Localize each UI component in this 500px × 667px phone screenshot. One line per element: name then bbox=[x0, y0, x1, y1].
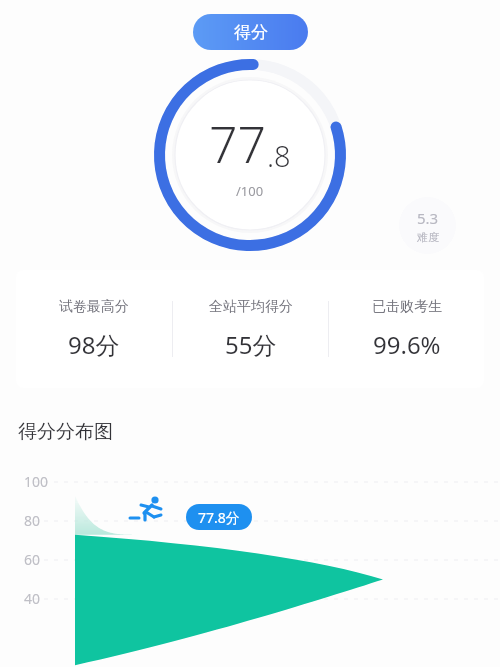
staticText: 难度 bbox=[417, 230, 439, 244]
staticText: 77.8分 bbox=[198, 508, 240, 527]
staticText: 100 bbox=[24, 472, 49, 491]
staticText: 得分分布图 bbox=[18, 420, 113, 444]
button[interactable]: 试卷最高分 bbox=[16, 270, 484, 388]
staticText: 80 bbox=[24, 511, 41, 530]
staticText: 40 bbox=[24, 589, 41, 608]
staticText: /100 bbox=[236, 182, 264, 200]
button[interactable]: 得分 bbox=[193, 14, 308, 50]
staticText: 55分 bbox=[225, 328, 277, 361]
other: Runner position marker bbox=[128, 493, 180, 533]
staticText: 试卷最高分 bbox=[59, 298, 129, 316]
staticText: 99.6% bbox=[373, 328, 441, 361]
staticText: 77 bbox=[209, 110, 267, 178]
button[interactable]: 77.8分 bbox=[198, 504, 240, 530]
staticText: 得分 bbox=[234, 22, 268, 43]
staticText: 98分 bbox=[68, 328, 120, 361]
staticText: 5.3 bbox=[417, 208, 439, 228]
staticText: .8 bbox=[267, 136, 291, 175]
staticText: 60 bbox=[24, 550, 41, 569]
button[interactable]: 5.3 bbox=[399, 197, 456, 254]
staticText: 已击败考生 bbox=[372, 298, 442, 316]
staticText: 全站平均得分 bbox=[209, 298, 293, 316]
